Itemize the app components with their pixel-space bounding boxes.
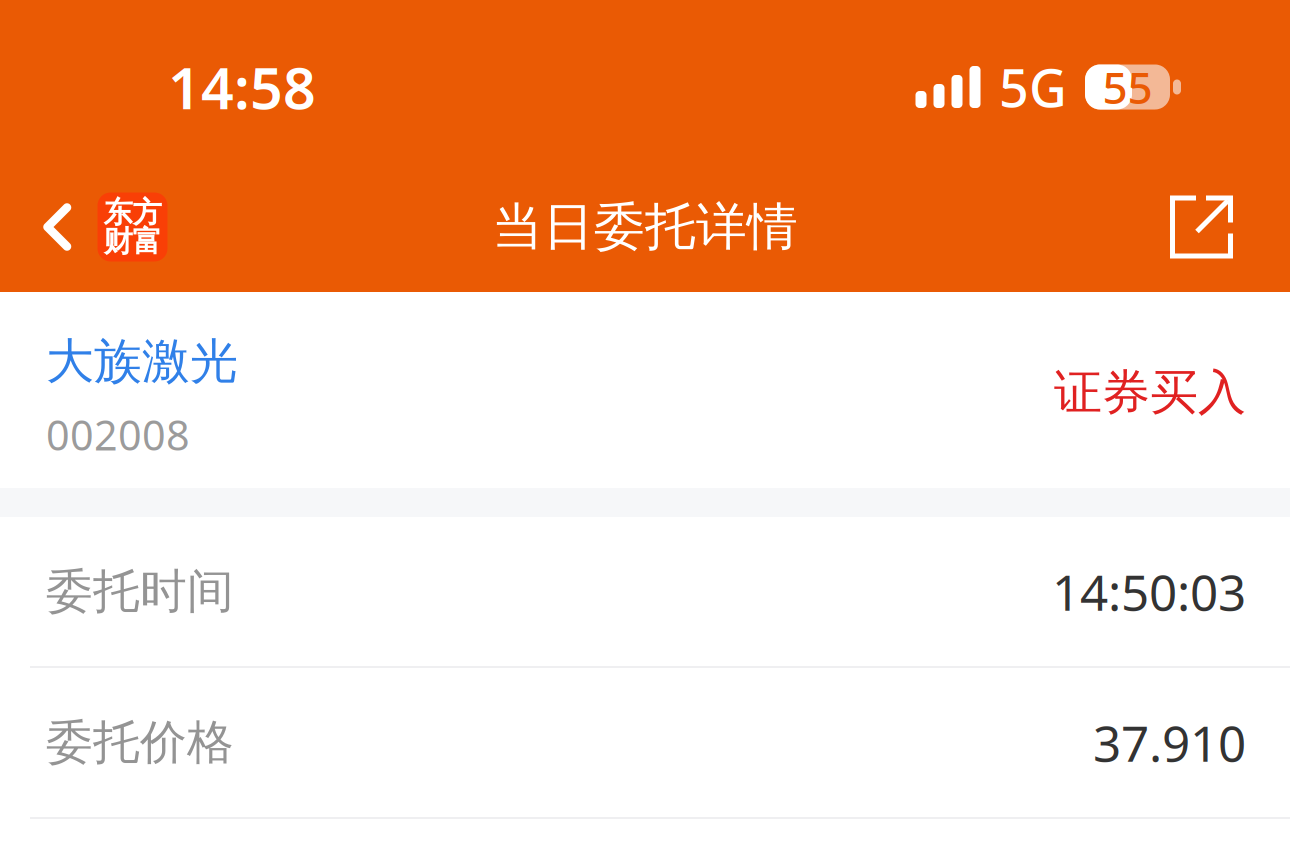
staticText: 委托时间 xyxy=(46,563,234,620)
staticText: 002008 xyxy=(46,407,190,462)
staticText: 委托价格 xyxy=(46,714,234,771)
staticText: 37.910 xyxy=(1093,710,1246,775)
staticText: 14:50:03 xyxy=(1052,559,1246,624)
button[interactable]: 大族激光 xyxy=(46,336,238,386)
staticText: 大族激光 xyxy=(46,332,238,391)
button[interactable]: Back xyxy=(0,181,181,273)
staticText: 东方 xyxy=(103,194,161,230)
staticText: 14:58 xyxy=(168,49,316,125)
staticText: 财富 xyxy=(103,223,161,259)
staticText: 证券买入 xyxy=(1054,363,1246,422)
staticText: 55 xyxy=(1102,58,1152,116)
staticText: 5G xyxy=(999,52,1067,122)
button[interactable]: Share xyxy=(1150,181,1290,273)
staticText: 当日委托详情 xyxy=(492,196,798,258)
